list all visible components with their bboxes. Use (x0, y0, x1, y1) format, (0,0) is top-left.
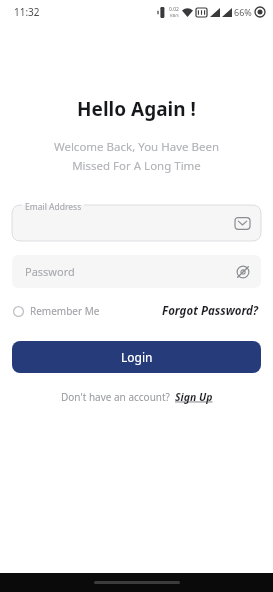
other: Show password (236, 265, 250, 279)
staticText: Don't have an account? (61, 390, 170, 404)
staticText: Login (121, 349, 153, 365)
staticText: 11:32 (14, 5, 40, 19)
staticText: Sign Up (175, 390, 213, 404)
other: Email (235, 216, 250, 231)
button[interactable]: Forgot Password? (162, 303, 260, 319)
staticText: 0.02 (169, 6, 179, 13)
staticText: Forgot Password? (162, 303, 259, 319)
staticText: Remember Me (30, 304, 100, 318)
button[interactable]: Login (12, 341, 261, 373)
staticText: Hello Again ! (0, 96, 273, 122)
staticText: Password (25, 264, 75, 279)
button[interactable]: Sign Up (175, 390, 213, 404)
staticText: Email Address (25, 201, 82, 213)
button[interactable]: Email Address (12, 201, 261, 241)
staticText: Welcome Back, You Have Been Missed For A… (18, 139, 255, 173)
staticText: 66% (234, 6, 252, 18)
staticText: KB/S (170, 13, 179, 18)
button[interactable]: Password (12, 255, 261, 288)
button[interactable]: Remember Me (13, 304, 106, 318)
